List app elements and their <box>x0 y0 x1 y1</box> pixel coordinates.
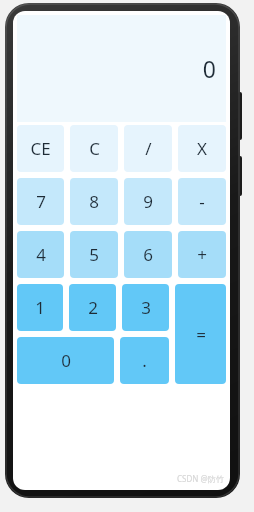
button[interactable]: 8 <box>70 178 118 225</box>
staticText: X <box>197 137 207 160</box>
staticText: 8 <box>89 190 99 213</box>
button[interactable]: 6 <box>124 231 172 278</box>
staticText: 9 <box>143 190 153 213</box>
staticText: 6 <box>143 243 153 266</box>
button[interactable]: . <box>120 337 169 384</box>
staticText: 5 <box>89 243 99 266</box>
button[interactable]: / <box>124 125 172 172</box>
button[interactable]: X <box>178 125 226 172</box>
button[interactable]: 2 <box>69 284 116 331</box>
staticText: + <box>197 243 207 266</box>
staticText: CSDN @防竹 <box>177 473 224 484</box>
staticText: . <box>142 349 147 372</box>
button[interactable]: C <box>70 125 118 172</box>
staticText: 1 <box>35 296 45 319</box>
staticText: 4 <box>36 243 46 266</box>
staticText: 7 <box>36 190 46 213</box>
button[interactable]: 5 <box>70 231 118 278</box>
button[interactable]: - <box>178 178 226 225</box>
staticText: / <box>145 137 152 160</box>
staticText: 3 <box>141 296 151 319</box>
button[interactable]: 9 <box>124 178 172 225</box>
staticText: 0 <box>61 349 71 372</box>
button[interactable]: 0 <box>17 337 114 384</box>
button[interactable]: = <box>175 284 226 384</box>
button[interactable]: + <box>178 231 226 278</box>
staticText: = <box>196 323 206 346</box>
button[interactable]: 4 <box>17 231 64 278</box>
staticText: 0 <box>202 53 216 84</box>
staticText: 2 <box>88 296 98 319</box>
button[interactable]: 7 <box>17 178 64 225</box>
staticText: - <box>199 190 205 213</box>
staticText: CE <box>30 137 51 160</box>
button[interactable]: CE <box>17 125 64 172</box>
button[interactable]: 1 <box>17 284 63 331</box>
staticText: C <box>89 137 100 160</box>
button[interactable]: 3 <box>122 284 169 331</box>
